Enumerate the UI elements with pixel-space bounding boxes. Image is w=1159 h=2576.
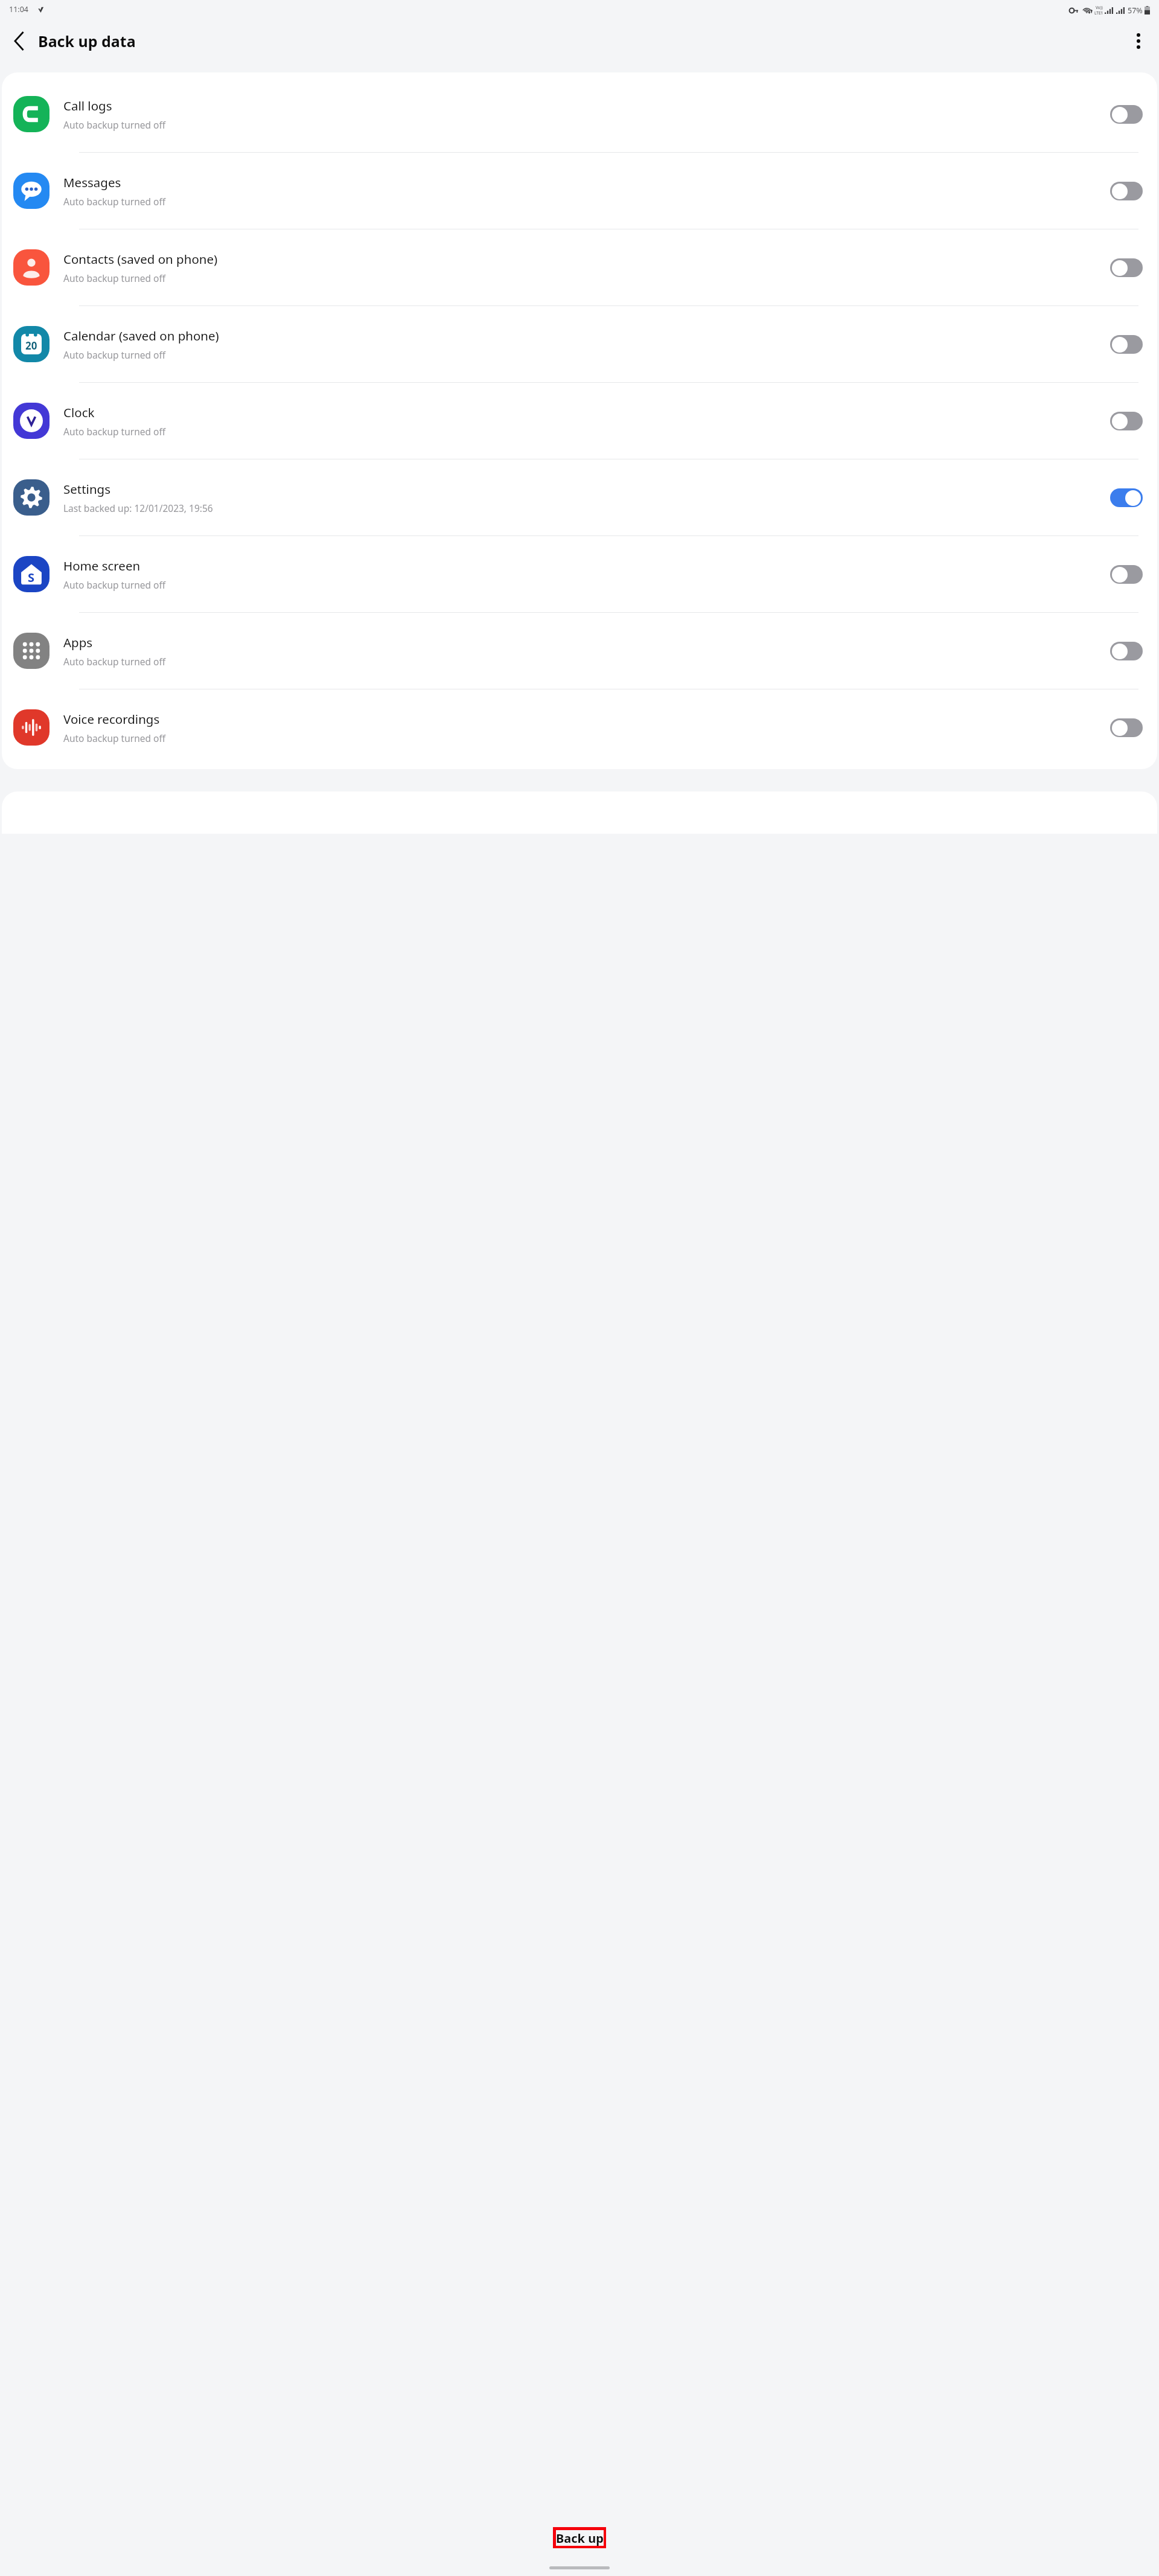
staticText: Voice recordings	[63, 711, 160, 727]
button[interactable]: Off	[1110, 182, 1143, 200]
staticText: Calendar (saved on phone)	[63, 327, 219, 344]
staticText: Auto backup turned off	[63, 655, 166, 668]
button[interactable]: Off	[1110, 335, 1143, 354]
button[interactable]: Contacts (saved on phone)	[2, 229, 1157, 305]
staticText: Home screen	[63, 557, 141, 574]
staticText: LTE1	[1094, 10, 1103, 16]
staticText: Last backed up: 12/01/2023, 19:56	[63, 502, 213, 514]
button[interactable]: Voice recordings	[2, 689, 1157, 765]
button[interactable]: Call logs	[2, 76, 1157, 152]
staticText: Auto backup turned off	[63, 348, 166, 361]
staticText: Clock	[63, 404, 95, 421]
button[interactable]: Back	[5, 27, 34, 56]
button[interactable]: Settings	[2, 459, 1157, 535]
button[interactable]: On	[1110, 488, 1143, 507]
button[interactable]: Apps	[2, 613, 1157, 689]
staticText: Auto backup turned off	[63, 272, 166, 284]
staticText: Auto backup turned off	[63, 195, 166, 208]
button[interactable]: Off	[1110, 565, 1143, 584]
button[interactable]: More options	[1124, 27, 1153, 56]
staticText: Back up now	[556, 2530, 604, 2546]
staticText: Auto backup turned off	[63, 425, 166, 438]
staticText: Settings	[63, 481, 111, 497]
button[interactable]: Off	[1110, 258, 1143, 277]
staticText: Back up data	[38, 31, 136, 51]
button[interactable]: Back up now	[556, 2530, 604, 2546]
button[interactable]: Off	[1110, 105, 1143, 124]
staticText: S	[28, 569, 35, 586]
staticText: Auto backup turned off	[63, 578, 166, 591]
button[interactable]: Off	[1110, 412, 1143, 430]
staticText: 11:04	[9, 4, 28, 14]
button[interactable]: S	[2, 536, 1157, 612]
staticText: 57%	[1128, 5, 1143, 16]
button[interactable]: 20	[2, 306, 1157, 382]
staticText: Vo))	[1096, 5, 1103, 10]
staticText: Auto backup turned off	[63, 732, 166, 744]
staticText: 20	[25, 339, 37, 353]
staticText: Call logs	[63, 97, 112, 114]
staticText: Messages	[63, 174, 121, 191]
button[interactable]: Off	[1110, 718, 1143, 737]
button[interactable]: Clock	[2, 383, 1157, 459]
staticText: Apps	[63, 634, 93, 651]
button[interactable]: Messages	[2, 153, 1157, 229]
staticText: Auto backup turned off	[63, 118, 166, 131]
staticText: Contacts (saved on phone)	[63, 251, 218, 267]
button[interactable]: Off	[1110, 642, 1143, 660]
